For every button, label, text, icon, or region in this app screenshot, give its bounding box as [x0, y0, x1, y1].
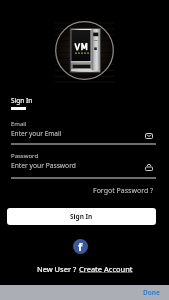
- staticText: Password: [11, 152, 39, 160]
- button[interactable]: Forgot Password ?: [93, 186, 154, 196]
- button[interactable]: Sign in with Facebook: [73, 239, 88, 254]
- staticText: Done: [143, 288, 160, 297]
- button[interactable]: Create Account: [79, 264, 133, 274]
- staticText: New User ?: [37, 264, 79, 274]
- staticText: Forgot Password ?: [93, 186, 154, 196]
- staticText: Enter your Password: [11, 161, 76, 170]
- staticText: Enter your Email: [11, 129, 62, 138]
- other: Email: [145, 133, 153, 139]
- button[interactable]: Sign In: [7, 208, 156, 225]
- staticText: Email: [11, 120, 27, 128]
- button[interactable]: Done: [143, 288, 160, 297]
- staticText: f: [78, 239, 83, 254]
- other: Password: [145, 163, 153, 171]
- staticText: Sign In: [11, 96, 33, 105]
- staticText: Sign In: [70, 212, 93, 221]
